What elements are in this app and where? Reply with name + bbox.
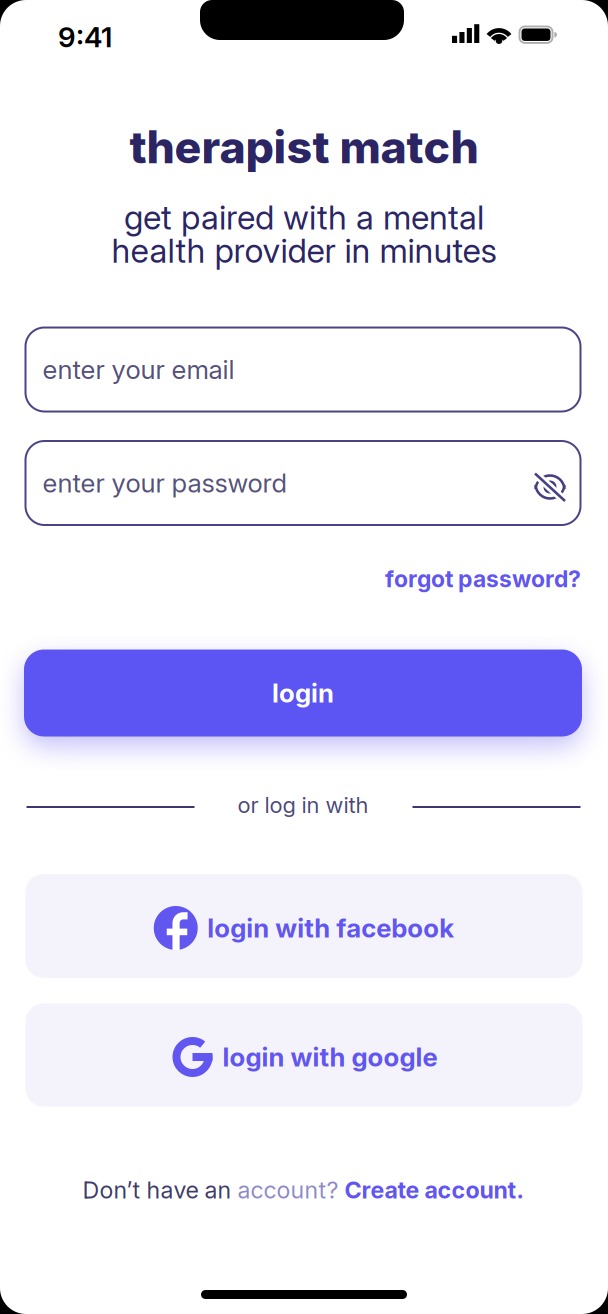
staticText: Create account.: [344, 1176, 523, 1204]
staticText: 9:41: [58, 20, 112, 54]
button[interactable]: enter your email: [24, 326, 581, 412]
button[interactable]: login with facebook: [25, 874, 582, 978]
button[interactable]: login: [24, 649, 582, 736]
button[interactable]: Create account.: [344, 1176, 523, 1204]
staticText: health provider in minutes: [111, 230, 496, 271]
button[interactable]: login with google: [25, 1003, 582, 1106]
staticText: login with facebook: [207, 912, 454, 944]
staticText: login: [272, 677, 334, 709]
staticText: ?: [326, 1176, 344, 1204]
staticText: account: [237, 1176, 326, 1204]
staticText: enter your password: [42, 467, 287, 499]
button[interactable]: Show password: [528, 465, 572, 509]
staticText: get paired with a mental: [124, 197, 484, 237]
staticText: or log in with: [237, 792, 368, 818]
staticText: therapist match: [129, 120, 478, 174]
staticText: login with google: [222, 1041, 437, 1073]
staticText: enter your email: [42, 354, 234, 385]
staticText: forgot password?: [385, 565, 581, 593]
button[interactable]: enter your password: [24, 440, 581, 526]
staticText: Don’t have an: [82, 1176, 237, 1204]
button[interactable]: forgot password?: [385, 565, 581, 593]
